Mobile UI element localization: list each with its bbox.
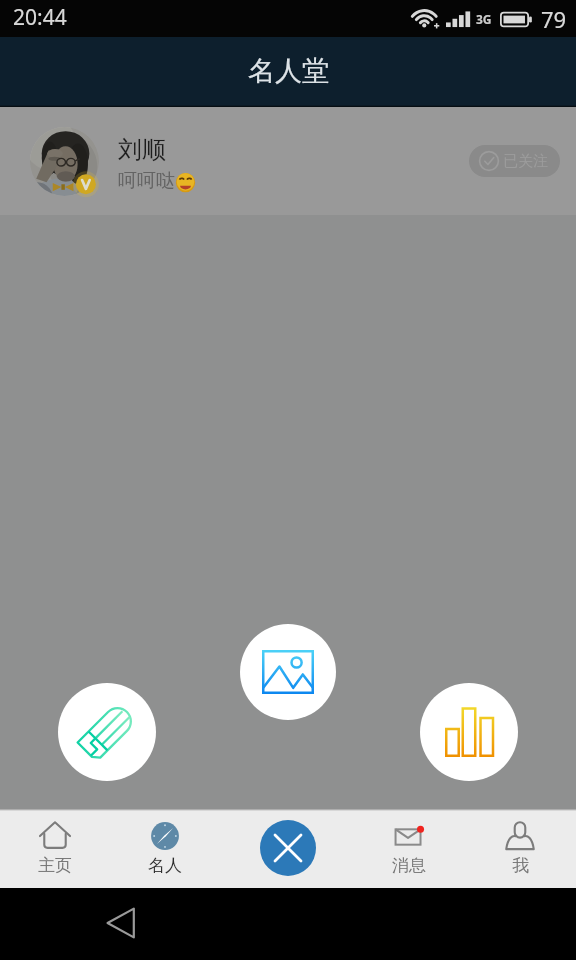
button[interactable]: Vote [420, 683, 518, 781]
other: Back [105, 905, 137, 941]
button[interactable]: Write post [58, 683, 156, 781]
staticText: 名人 [148, 855, 182, 876]
button[interactable]: 已关注 [469, 145, 560, 177]
button[interactable]: Photo [240, 624, 336, 720]
staticText: 呵呵哒 [118, 169, 175, 193]
staticText: 名人堂 [248, 54, 329, 88]
staticText: 主页 [38, 855, 72, 876]
staticText: 已关注 [503, 152, 548, 171]
button[interactable]: Close menu [260, 820, 316, 876]
staticText: 79 [541, 4, 567, 34]
staticText: 消息 [392, 855, 426, 876]
button[interactable]: 刘顺 [0, 107, 576, 215]
button[interactable]: 消息 [354, 809, 464, 888]
button[interactable]: 名人 [110, 809, 220, 888]
staticText: 20:44 [13, 3, 67, 32]
button[interactable]: 我 [464, 809, 576, 888]
staticText: 刘顺 [118, 135, 166, 165]
staticText: 3G [476, 11, 492, 27]
staticText: 我 [512, 855, 529, 876]
button[interactable]: 主页 [0, 809, 110, 888]
